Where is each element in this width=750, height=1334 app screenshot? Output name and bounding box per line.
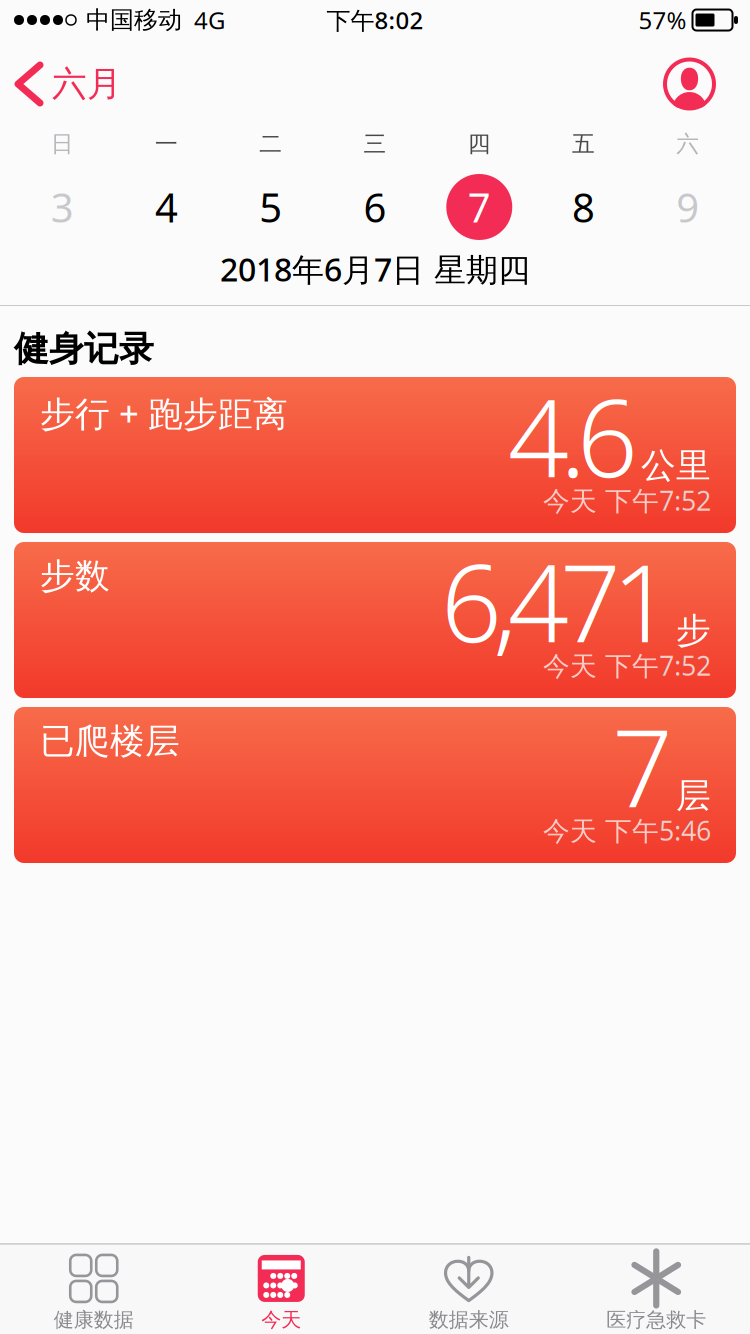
- staticText: 今天 下午7:52: [543, 648, 711, 683]
- button[interactable]: 9: [636, 180, 740, 233]
- staticText: 一: [155, 130, 178, 158]
- staticText: 6,471: [441, 530, 673, 672]
- staticText: 六月: [52, 63, 122, 105]
- staticText: 5: [259, 180, 282, 233]
- staticText: 层: [676, 774, 711, 817]
- button[interactable]: 已爬楼层: [14, 707, 736, 863]
- button[interactable]: 医疗急救卡: [562, 1251, 750, 1332]
- button[interactable]: 8: [531, 180, 636, 233]
- staticText: 步数: [40, 555, 110, 598]
- staticText: 已爬楼层: [40, 720, 180, 763]
- staticText: 7: [612, 695, 673, 837]
- staticText: 4.6: [508, 365, 638, 507]
- staticText: 6: [363, 180, 386, 233]
- button[interactable]: 健康数据: [0, 1251, 187, 1332]
- staticText: 日: [51, 130, 74, 158]
- staticText: 健身记录: [14, 328, 154, 370]
- staticText: 二: [259, 130, 282, 158]
- staticText: 8: [572, 180, 595, 233]
- staticText: 公里: [641, 444, 711, 487]
- staticText: 7: [468, 180, 491, 233]
- button[interactable]: 数据来源: [375, 1251, 562, 1332]
- staticText: 今天: [261, 1307, 301, 1332]
- staticText: 2018年6月7日 星期四: [220, 248, 530, 290]
- button[interactable]: 5: [219, 180, 323, 233]
- staticText: 3: [51, 180, 74, 233]
- staticText: 步: [676, 609, 711, 652]
- button[interactable]: 步行 + 跑步距离: [14, 377, 736, 533]
- staticText: 三: [363, 130, 386, 158]
- staticText: 下午8:02: [326, 4, 423, 36]
- staticText: 五: [572, 130, 595, 158]
- staticText: 步行 + 跑步距离: [40, 390, 288, 436]
- staticText: 今天 下午7:52: [543, 483, 711, 518]
- button[interactable]: 步数: [14, 542, 736, 698]
- staticText: 57%: [638, 4, 686, 36]
- button[interactable]: 个人资料: [663, 57, 750, 110]
- staticText: 健康数据: [54, 1307, 134, 1332]
- button[interactable]: 6: [323, 180, 427, 233]
- staticText: 中国移动: [86, 5, 182, 35]
- button[interactable]: 3: [10, 180, 114, 233]
- staticText: 9: [676, 180, 699, 233]
- button[interactable]: 六月: [0, 63, 122, 105]
- staticText: 医疗急救卡: [606, 1307, 706, 1332]
- button[interactable]: 今天: [187, 1251, 375, 1332]
- staticText: 4: [155, 180, 178, 233]
- button[interactable]: 7: [427, 174, 531, 240]
- staticText: 四: [468, 130, 491, 158]
- staticText: 4G: [194, 4, 225, 36]
- staticText: 数据来源: [429, 1307, 509, 1332]
- staticText: 六: [676, 130, 699, 158]
- staticText: 今天 下午5:46: [543, 813, 711, 848]
- button[interactable]: 4: [114, 180, 219, 233]
